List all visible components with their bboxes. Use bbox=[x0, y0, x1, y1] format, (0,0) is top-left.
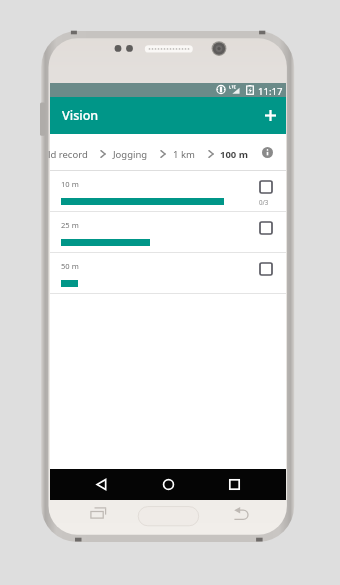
button[interactable]: 10 m bbox=[50, 171, 286, 212]
button[interactable]: Add bbox=[253, 98, 287, 132]
button[interactable]: 100 m bbox=[220, 148, 249, 161]
button[interactable]: 50 m bbox=[50, 253, 286, 294]
button[interactable]: Back bbox=[86, 469, 117, 500]
staticText: 50 m bbox=[61, 261, 79, 271]
button[interactable]: 1 km bbox=[173, 148, 195, 161]
button[interactable]: ld record bbox=[48, 148, 88, 161]
button[interactable]: Info bbox=[255, 140, 279, 164]
staticText: 25 m bbox=[61, 220, 79, 230]
button[interactable]: Recents bbox=[219, 469, 250, 500]
staticText: 11:17 bbox=[258, 85, 283, 98]
staticText: Vision bbox=[62, 107, 99, 124]
button[interactable]: Jogging bbox=[113, 148, 148, 161]
button[interactable]: Toggle 10 m bbox=[260, 181, 272, 193]
staticText: 0/3 bbox=[259, 198, 269, 206]
staticText: 10 m bbox=[61, 179, 79, 189]
button[interactable]: Toggle 25 m bbox=[260, 222, 272, 234]
button[interactable]: Home bbox=[153, 469, 184, 500]
button[interactable]: Toggle 50 m bbox=[260, 263, 272, 275]
button[interactable]: 25 m bbox=[50, 212, 286, 253]
